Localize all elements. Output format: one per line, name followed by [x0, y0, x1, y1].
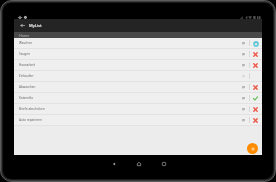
button[interactable]: Briefe abschicken [14, 104, 262, 114]
staticText: Home [19, 33, 30, 38]
button[interactable]: Home [133, 158, 144, 169]
staticText: Waschen [19, 41, 242, 45]
button[interactable]: Waschen [14, 38, 262, 48]
button[interactable]: Recent apps [158, 158, 169, 169]
staticText: MyList [29, 23, 42, 28]
button[interactable]: Navigate up [14, 19, 28, 32]
staticText: Saugen [19, 52, 242, 56]
staticText: Einkaufen [19, 74, 242, 78]
staticText: Auto reparieren [19, 118, 242, 122]
staticText: Abwaschen [19, 85, 242, 89]
staticText: Katzenklo [19, 96, 242, 100]
button[interactable]: Abwaschen [14, 82, 262, 92]
staticText: Hausarbeit [19, 63, 242, 67]
button[interactable]: Back [108, 158, 119, 169]
button[interactable]: Einkaufen [14, 71, 262, 81]
button[interactable]: Auto reparieren [14, 115, 262, 125]
button[interactable]: Hausarbeit [14, 60, 262, 70]
button[interactable]: Saugen [14, 49, 262, 59]
button[interactable]: Add item [247, 143, 258, 154]
button[interactable]: Katzenklo [14, 93, 262, 103]
staticText: Briefe abschicken [19, 107, 242, 111]
